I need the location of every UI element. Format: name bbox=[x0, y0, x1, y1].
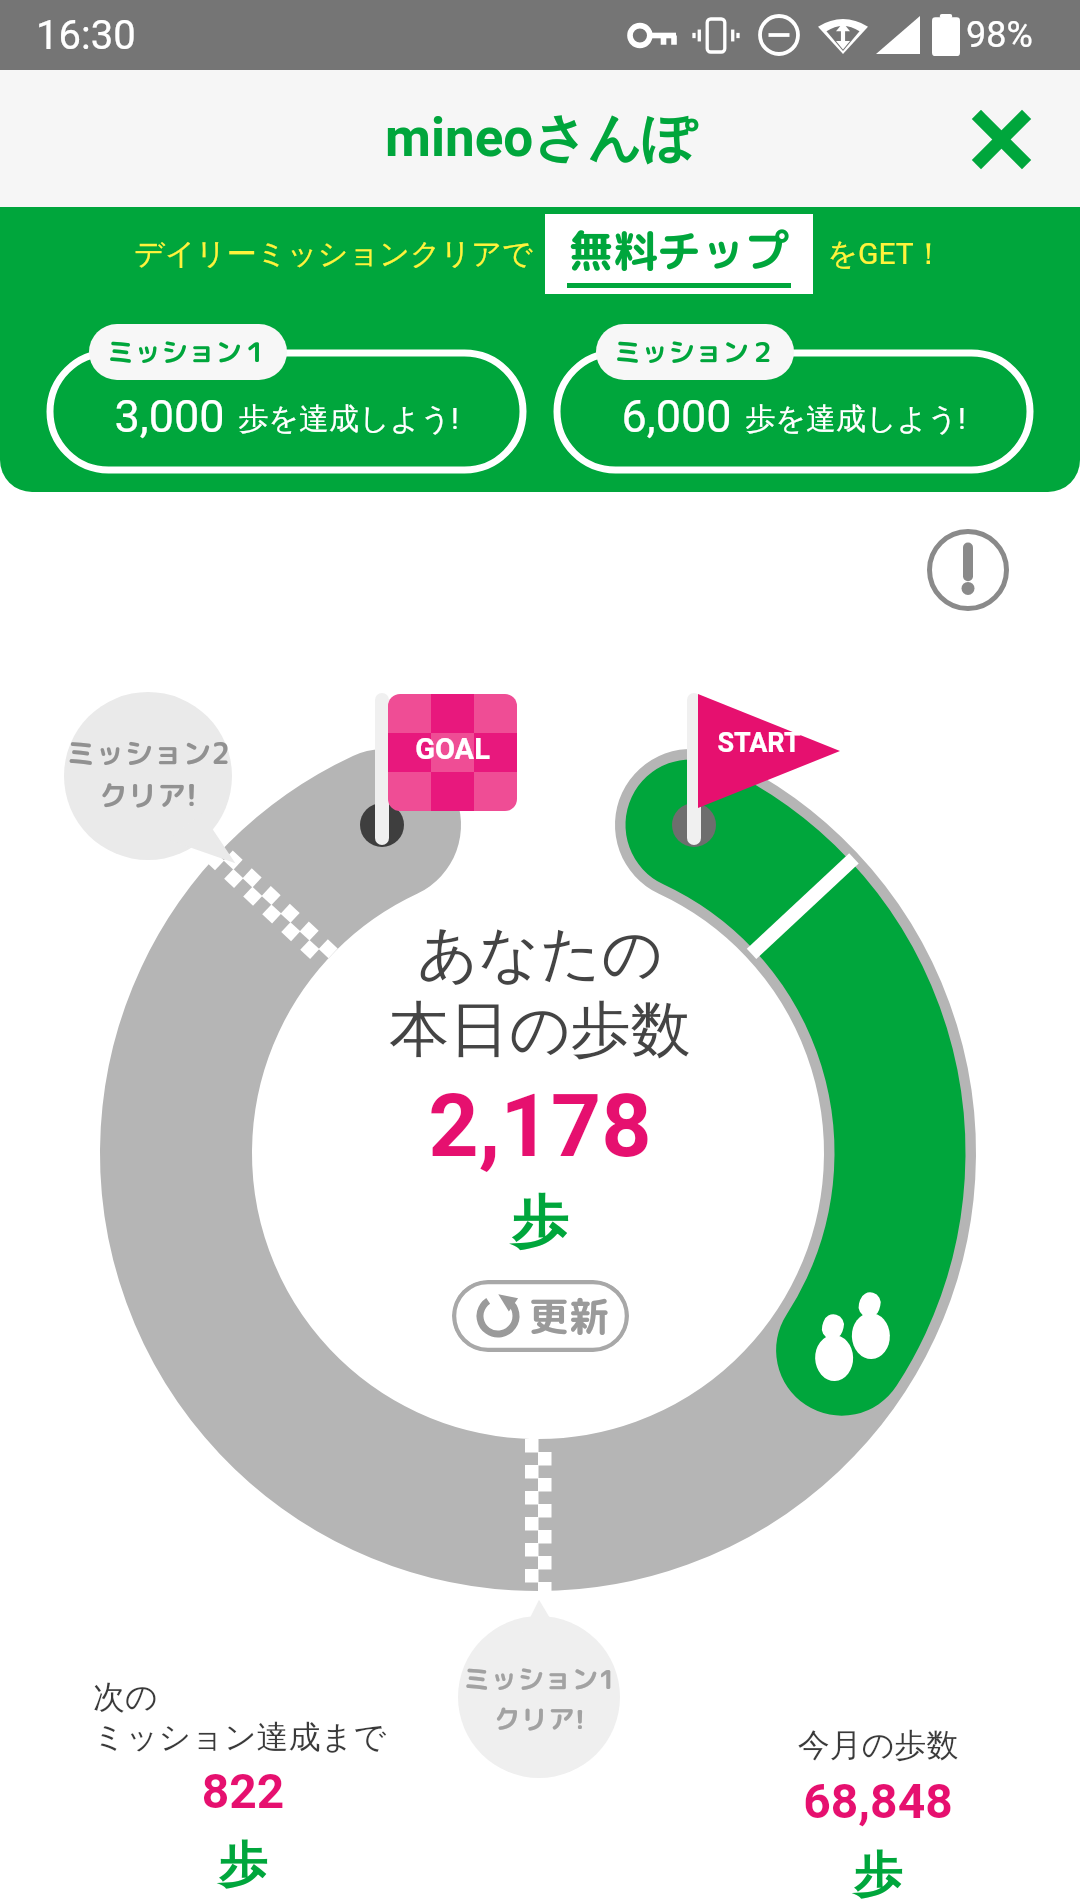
staticText: 本日の歩数 bbox=[389, 992, 691, 1068]
staticText: 16:30 bbox=[36, 12, 136, 59]
button[interactable]: Close bbox=[955, 93, 1047, 185]
staticText: 更新 bbox=[529, 1288, 609, 1344]
staticText: mineoさんぽ bbox=[385, 105, 696, 172]
staticText: ミッション２ bbox=[614, 333, 776, 371]
staticText: 歩 bbox=[768, 1845, 988, 1900]
staticText: 今月の歩数 bbox=[768, 1725, 988, 1765]
staticText: あなたの bbox=[417, 916, 663, 992]
staticText: 3,000 bbox=[114, 390, 225, 443]
button[interactable]: 6,000 bbox=[554, 324, 1033, 473]
staticText: 68,848 bbox=[768, 1773, 988, 1829]
button[interactable]: 3,000 bbox=[47, 324, 526, 473]
staticText: 2,178 bbox=[428, 1074, 652, 1177]
staticText: 歩を達成しよう! bbox=[238, 400, 459, 438]
staticText: 822 bbox=[93, 1763, 393, 1819]
staticText: START bbox=[717, 727, 801, 759]
staticText: GOAL bbox=[415, 732, 490, 766]
staticText: 歩を達成しよう! bbox=[745, 400, 966, 438]
staticText: ミッション１ bbox=[107, 333, 269, 371]
button[interactable]: 更新 bbox=[452, 1280, 629, 1352]
staticText: 歩 bbox=[93, 1835, 393, 1895]
staticText: ミッション2 クリア! bbox=[66, 733, 230, 815]
staticText: 6,000 bbox=[621, 390, 732, 443]
button[interactable]: Information bbox=[908, 510, 1028, 630]
staticText: 98% bbox=[966, 14, 1033, 56]
staticText: ミッション1 クリア! bbox=[463, 1660, 616, 1738]
staticText: 歩 bbox=[512, 1187, 568, 1258]
staticText: をGET！ bbox=[827, 235, 944, 273]
staticText: 次の bbox=[93, 1677, 393, 1717]
staticText: ミッション達成まで bbox=[93, 1717, 393, 1757]
staticText: 無料チップ bbox=[569, 220, 789, 281]
staticText: デイリーミッションクリアで bbox=[134, 235, 533, 273]
